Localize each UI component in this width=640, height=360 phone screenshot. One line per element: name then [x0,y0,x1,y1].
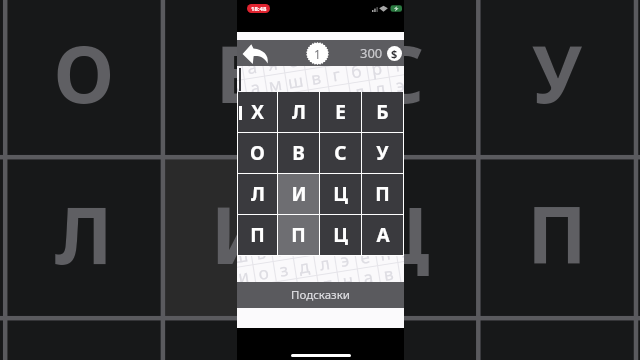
staticText: $ [391,46,398,61]
staticText: А [376,222,390,248]
button[interactable]: И [278,174,319,214]
button[interactable]: П [238,215,277,255]
staticText: Б [376,99,389,125]
staticText: О [250,140,265,166]
staticText: В [292,140,305,166]
button[interactable]: Х [238,92,277,132]
button[interactable]: Л [278,92,319,132]
staticText: Е [335,99,346,125]
staticText: У [376,140,389,166]
staticText: Подсказки [291,287,350,303]
staticText: Ц [333,181,348,207]
button[interactable]: Е [320,92,361,132]
button[interactable]: В [278,133,319,173]
button[interactable]: Л [238,174,277,214]
button[interactable]: С [320,133,361,173]
button[interactable]: П [362,174,403,214]
staticText: П [250,222,265,248]
staticText: И [291,181,307,207]
button[interactable]: У [362,133,403,173]
button[interactable]: Ц [320,215,361,255]
staticText: П [375,181,390,207]
button[interactable]: 1 [306,42,329,65]
button[interactable]: Undo [240,40,270,66]
staticText: С [334,140,347,166]
button[interactable]: А [362,215,403,255]
staticText: Л [292,99,306,125]
staticText: Ц [333,222,348,248]
button[interactable]: Б [362,92,403,132]
button[interactable]: Ц [320,174,361,214]
button[interactable]: Подсказки [237,282,404,308]
staticText: 1 [314,46,321,62]
staticText: Л [251,181,265,207]
staticText: П [291,222,306,248]
staticText: 18:48 [251,5,267,13]
button[interactable]: П [278,215,319,255]
staticText: Х [251,99,264,125]
staticText: 300 [360,44,383,62]
button[interactable]: О [238,133,277,173]
button[interactable]: 300 [360,44,402,62]
